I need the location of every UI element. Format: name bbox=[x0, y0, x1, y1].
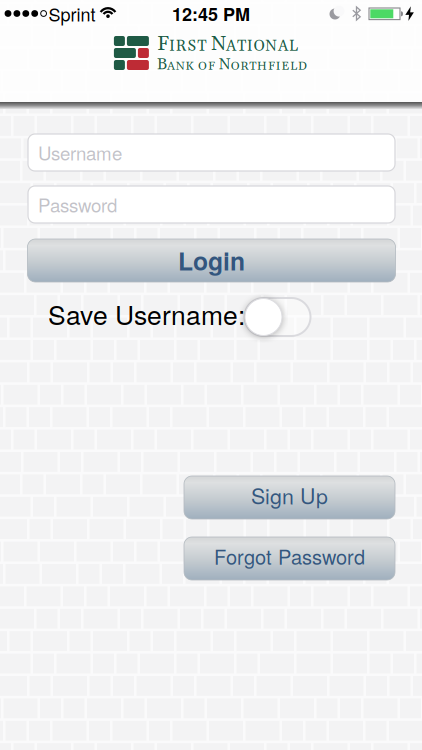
staticText: IRST bbox=[169, 37, 211, 56]
staticText: Login bbox=[178, 243, 245, 278]
staticText: 12:45 PM bbox=[172, 1, 250, 26]
staticText: Save Username: bbox=[48, 295, 245, 332]
button[interactable]: Username bbox=[28, 134, 395, 171]
staticText: N bbox=[219, 55, 231, 74]
staticText: ATIONAL bbox=[226, 37, 298, 56]
staticText: F bbox=[157, 31, 169, 57]
button[interactable]: Password bbox=[28, 186, 395, 223]
staticText: Forgot Password bbox=[214, 542, 365, 570]
button[interactable]: Sign Up bbox=[184, 476, 395, 519]
staticText: N bbox=[211, 31, 226, 57]
button[interactable]: Save Username bbox=[244, 298, 310, 336]
staticText: ORTHFIELD bbox=[231, 59, 307, 74]
button[interactable]: Forgot Password bbox=[184, 537, 395, 580]
staticText: ANK OF bbox=[167, 59, 219, 74]
button[interactable]: Login bbox=[27, 239, 395, 282]
staticText: B bbox=[157, 55, 167, 74]
staticText: Sprint bbox=[48, 1, 95, 26]
staticText: Sign Up bbox=[251, 480, 328, 510]
staticText: Username bbox=[38, 139, 122, 166]
staticText: Password bbox=[38, 191, 117, 218]
